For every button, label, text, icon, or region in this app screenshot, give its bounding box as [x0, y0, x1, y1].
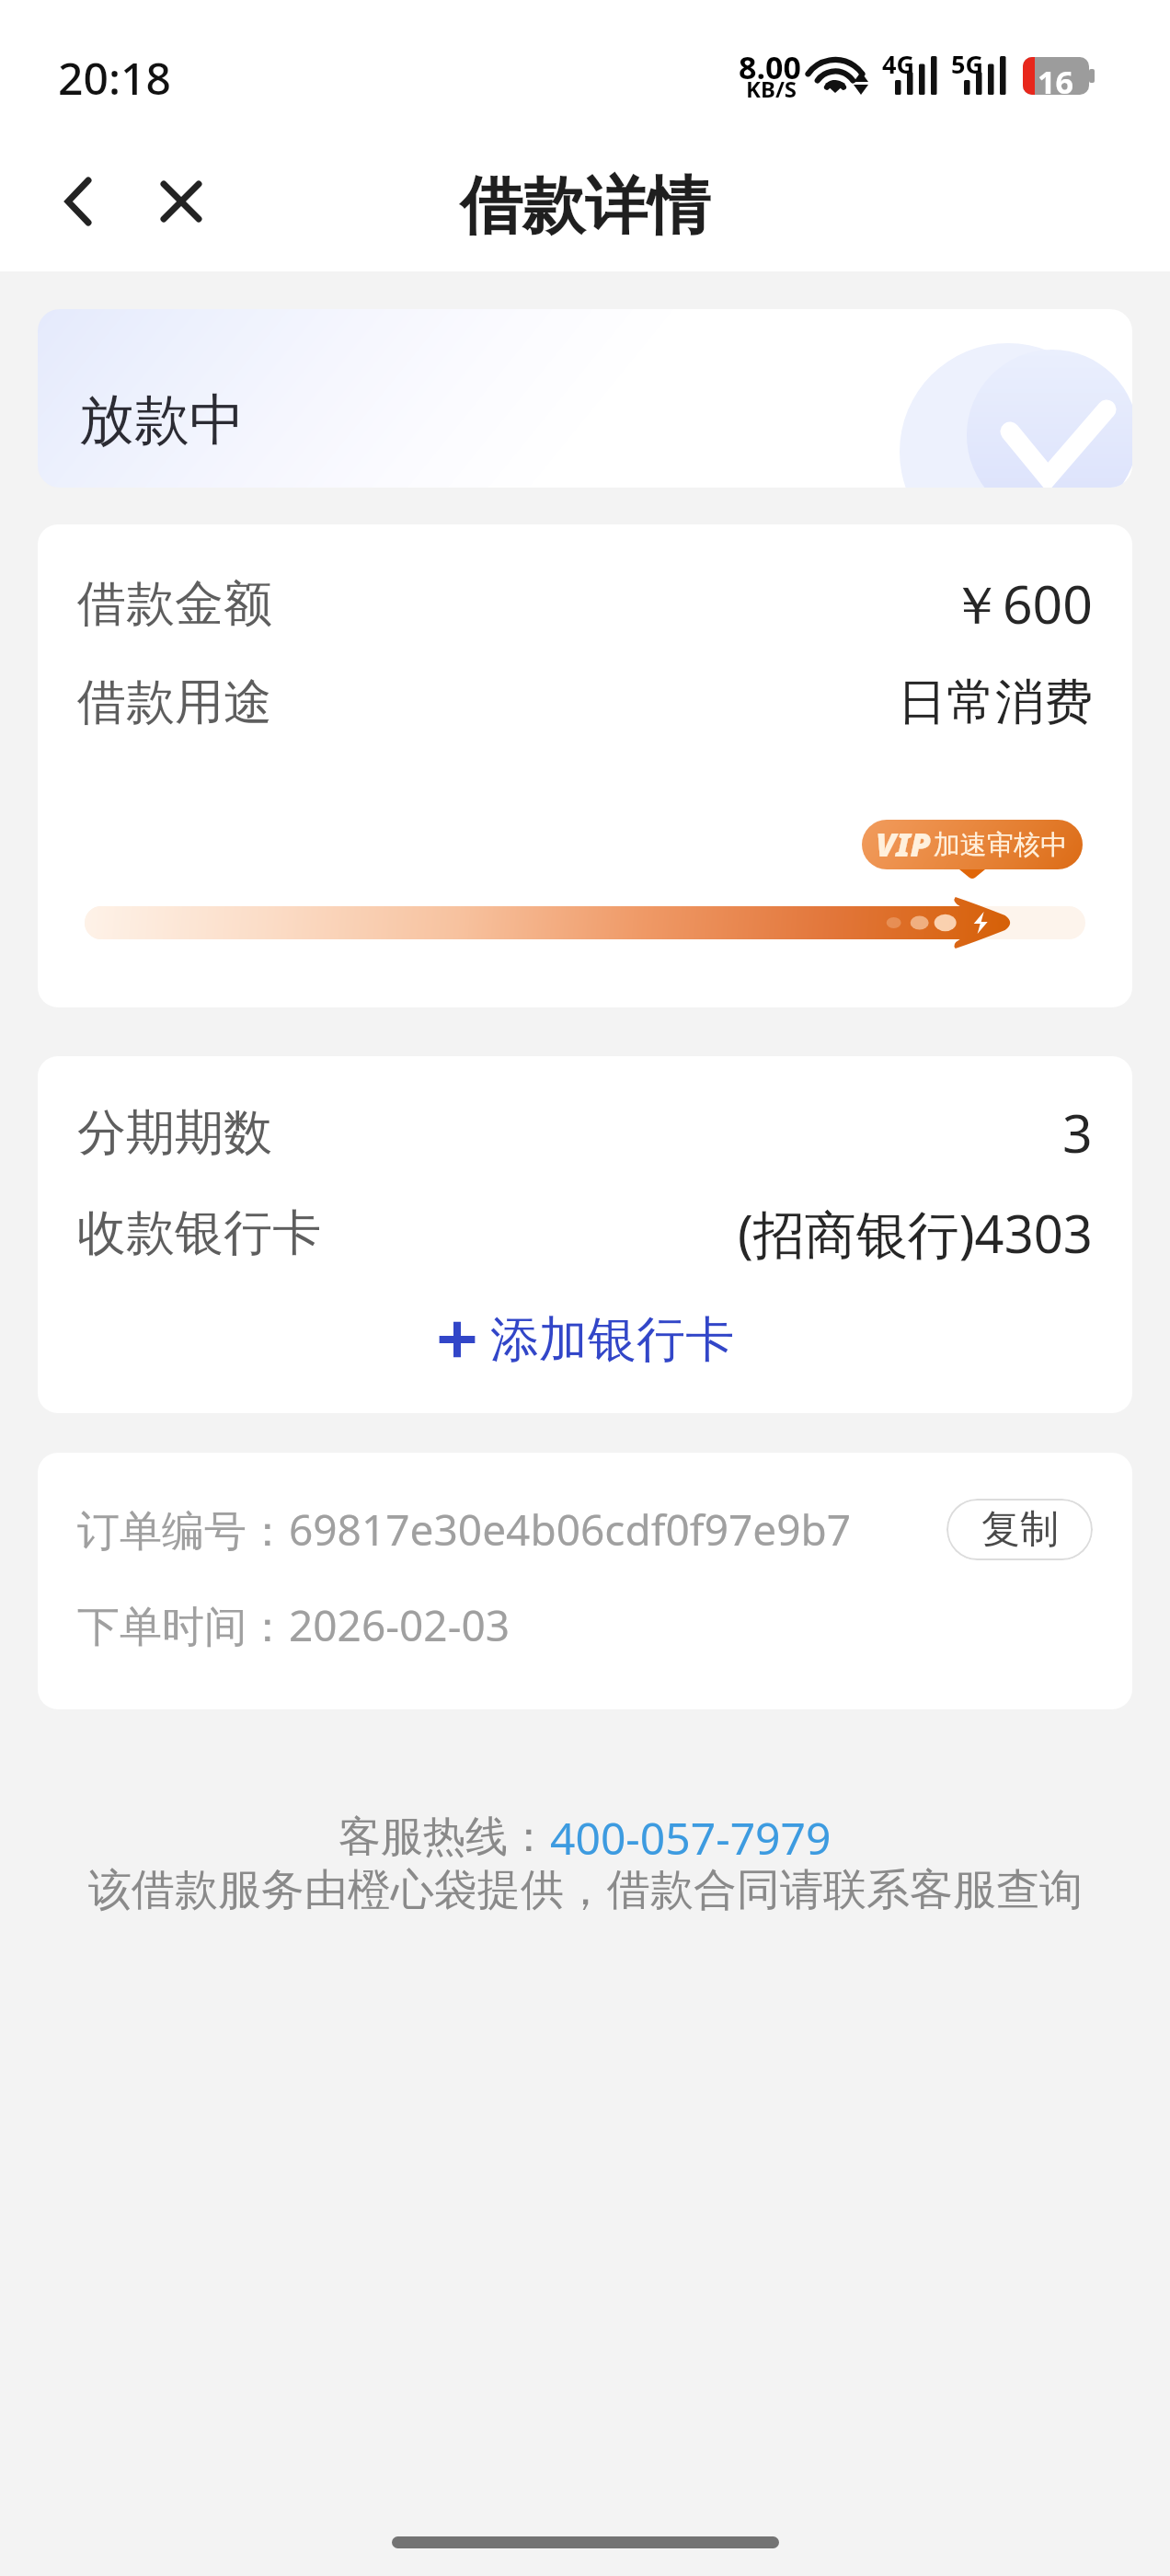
staticText: 收款银行卡	[77, 1202, 321, 1264]
staticText: VIP	[876, 822, 931, 867]
staticText: KB/S	[746, 74, 797, 104]
staticText: 放款中	[79, 385, 245, 455]
staticText: 该借款服务由橙心袋提供，借款合同请联系客服查询	[88, 1863, 1083, 1917]
staticText: (招商银行)4303	[738, 1198, 1093, 1268]
staticText: 16	[1038, 61, 1073, 98]
staticText: 下单时间：2026-02-03	[77, 1596, 510, 1654]
staticText: ￥600	[950, 568, 1093, 639]
staticText: 日常消费	[898, 672, 1093, 733]
button[interactable]: 复制	[946, 1499, 1093, 1560]
staticText: 400-057-7979	[550, 1808, 832, 1868]
staticText: 20:18	[58, 48, 171, 108]
button[interactable]: 添加银行卡	[38, 1305, 1132, 1374]
staticText: 借款用途	[77, 672, 272, 733]
staticText: 4G	[882, 47, 914, 81]
staticText: 复制	[981, 1505, 1059, 1554]
staticText: 借款金额	[77, 573, 272, 635]
staticText: 加速审核中	[934, 828, 1067, 862]
staticText: 订单编号：69817e30e4b06cdf0f97e9b7	[77, 1501, 852, 1558]
staticText: 借款详情	[460, 167, 710, 247]
staticText: 客服热线：	[338, 1811, 550, 1864]
button[interactable]: Close	[142, 162, 221, 241]
staticText: 分期期数	[77, 1102, 272, 1164]
staticText: 5G	[951, 47, 983, 81]
staticText: 8.00	[739, 46, 801, 88]
button[interactable]: Back	[39, 162, 118, 241]
staticText: 3	[1062, 1097, 1093, 1168]
button[interactable]: 客服热线：	[338, 1807, 832, 1867]
staticText: 添加银行卡	[490, 1309, 734, 1371]
